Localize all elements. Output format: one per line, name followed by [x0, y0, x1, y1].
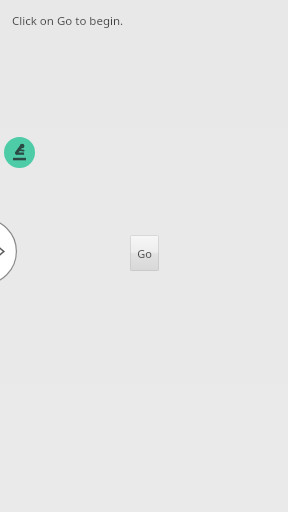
button[interactable]: Go [130, 235, 159, 271]
button[interactable]: Lab result [4, 137, 35, 168]
staticText: Click on Go to begin. [12, 13, 124, 29]
button[interactable]: Expand panel [0, 218, 17, 285]
staticText: Go [137, 246, 152, 261]
